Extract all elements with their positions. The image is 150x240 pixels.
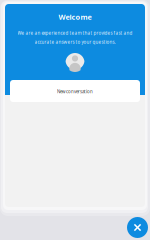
staticText: Welcome — [58, 12, 91, 22]
button[interactable]: Close — [127, 217, 148, 238]
button[interactable]: New conversation — [10, 80, 140, 102]
staticText: accurate answers to your questions. — [34, 39, 115, 45]
staticText: New conversation — [57, 88, 93, 94]
staticText: We are an experienced team that provides… — [17, 30, 132, 36]
